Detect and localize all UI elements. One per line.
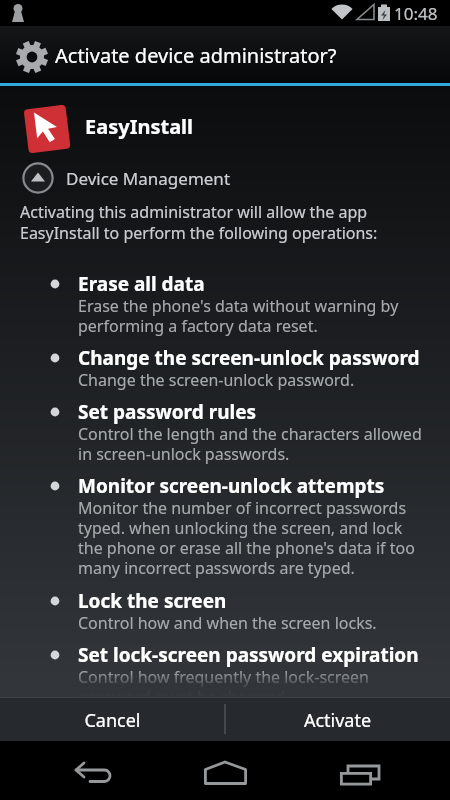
staticText: Erase the phone's data without warning b… (78, 295, 399, 336)
staticText: 10:48 (394, 2, 438, 25)
staticText: Lock the screen (78, 588, 227, 614)
staticText: Change the screen-unlock password. (78, 369, 355, 391)
staticText: Control how frequently the lock-screen p… (78, 666, 369, 707)
staticText: Monitor screen-unlock attempts (78, 473, 385, 499)
staticText: Set password rules (78, 399, 257, 425)
staticText: Monitor the number of incorrect password… (78, 497, 415, 578)
staticText: Activate device administrator? (55, 42, 337, 69)
staticText: EasyInstall (85, 113, 194, 140)
staticText: Change the screen-unlock password (78, 345, 420, 371)
button[interactable] (314, 741, 404, 800)
staticText: Control how and when the screen locks. (78, 612, 377, 634)
button[interactable]: Device Management (20, 160, 250, 196)
staticText: Cancel (0, 708, 225, 733)
button[interactable]: Activate (225, 698, 450, 741)
staticText: Device Management (66, 167, 231, 190)
button[interactable] (62, 741, 152, 800)
staticText: Erase all data (78, 271, 205, 297)
button[interactable] (180, 741, 270, 800)
staticText: Activate (225, 708, 450, 733)
button[interactable]: Cancel (0, 698, 225, 741)
staticText: Control the length and the characters al… (78, 423, 422, 464)
staticText: Activating this administrator will allow… (20, 201, 378, 244)
staticText: Set lock-screen password expiration (78, 642, 419, 668)
